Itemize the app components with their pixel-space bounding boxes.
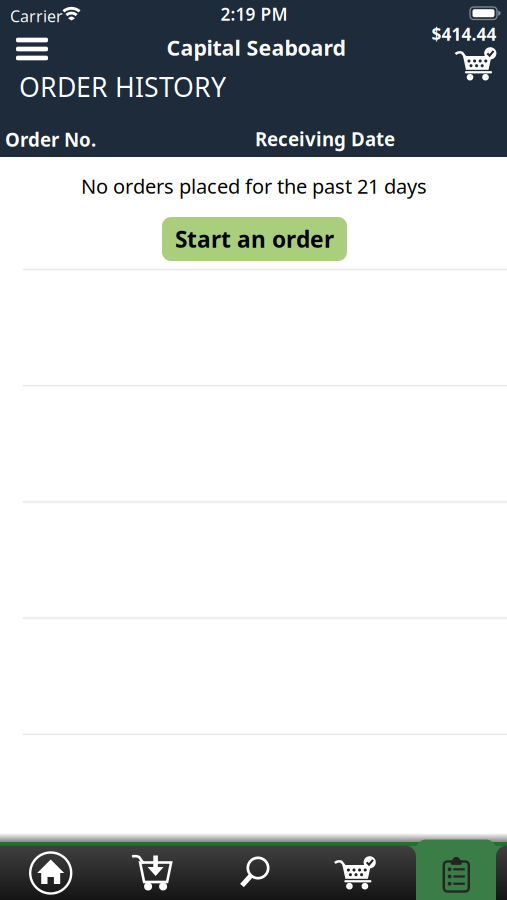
staticText: $414.44: [431, 22, 496, 45]
button[interactable]: Search: [203, 843, 304, 900]
staticText: Receiving Date: [255, 126, 395, 151]
staticText: ORDER HISTORY: [19, 69, 226, 104]
staticText: Capital Seaboard: [166, 33, 345, 62]
button[interactable]: Home: [0, 844, 101, 900]
button[interactable]: Start an order: [162, 217, 347, 261]
button[interactable]: Add to cart: [102, 843, 203, 900]
button[interactable]: Cart, $414.44: [431, 22, 496, 80]
staticText: Order No.: [5, 127, 96, 152]
staticText: Carrier: [10, 5, 63, 27]
staticText: 2:19 PM: [220, 2, 287, 25]
button[interactable]: Menu: [10, 31, 54, 67]
staticText: Start an order: [175, 224, 334, 254]
staticText: No orders placed for the past 21 days: [81, 173, 427, 199]
button[interactable]: Checkout: [304, 844, 405, 900]
button[interactable]: Order history: [406, 846, 507, 900]
